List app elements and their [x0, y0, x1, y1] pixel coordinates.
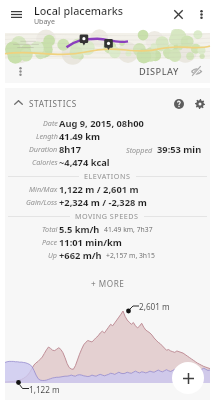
- button[interactable]: Navigation menu: [5, 2, 28, 26]
- staticText: Min/Max: [29, 184, 58, 194]
- staticText: Date: [43, 118, 58, 128]
- staticText: Length: [36, 131, 58, 141]
- button[interactable]: Close: [167, 2, 189, 26]
- staticText: ELEVATIONS: [84, 171, 131, 181]
- staticText: Duration: [29, 144, 58, 154]
- button[interactable]: Settings: [190, 94, 209, 113]
- staticText: 41.49 km, 7h37: [104, 225, 153, 234]
- staticText: 1,122 m / 2,601 m: [59, 183, 139, 196]
- staticText: Stopped: [126, 145, 153, 155]
- staticText: 5.5 km/h: [59, 223, 100, 236]
- button[interactable]: STATISTICS: [5, 88, 210, 116]
- staticText: 1,122 m: [29, 384, 60, 395]
- button[interactable]: + MORE: [85, 273, 130, 293]
- staticText: +662 m/h: [59, 249, 102, 262]
- staticText: ~4,474 kcal: [59, 156, 110, 169]
- staticText: Pace: [42, 237, 58, 247]
- staticText: Gain/Loss: [26, 197, 58, 207]
- staticText: MOVING SPEEDS: [75, 211, 139, 221]
- staticText: Total: [42, 224, 58, 234]
- button[interactable]: DISPLAY: [135, 59, 183, 83]
- staticText: + MORE: [91, 278, 125, 289]
- staticText: Aug 9, 2015, 08h00: [59, 117, 144, 130]
- staticText: Calories: [32, 157, 58, 167]
- staticText: STATISTICS: [29, 98, 77, 109]
- staticText: 41.49 km: [59, 130, 101, 143]
- staticText: DISPLAY: [139, 65, 179, 78]
- button[interactable]: More options: [191, 2, 212, 26]
- staticText: 2,601 m: [139, 301, 170, 312]
- staticText: 39:53 min: [157, 143, 202, 156]
- button[interactable]: Help: [169, 94, 188, 113]
- button[interactable]: Add placemark: [172, 362, 204, 394]
- staticText: 8h17: [59, 143, 81, 156]
- button[interactable]: Hide map overlay: [186, 59, 207, 83]
- staticText: 11:01 min/km: [59, 236, 122, 249]
- staticText: Ubaye: [34, 17, 55, 27]
- staticText: Local placemarks: [34, 3, 124, 18]
- staticText: Up: [48, 250, 58, 260]
- staticText: +2,157 m, 3h15: [106, 251, 155, 260]
- staticText: +2,324 m / -2,328 m: [59, 196, 147, 209]
- button[interactable]: Map options: [9, 59, 31, 83]
